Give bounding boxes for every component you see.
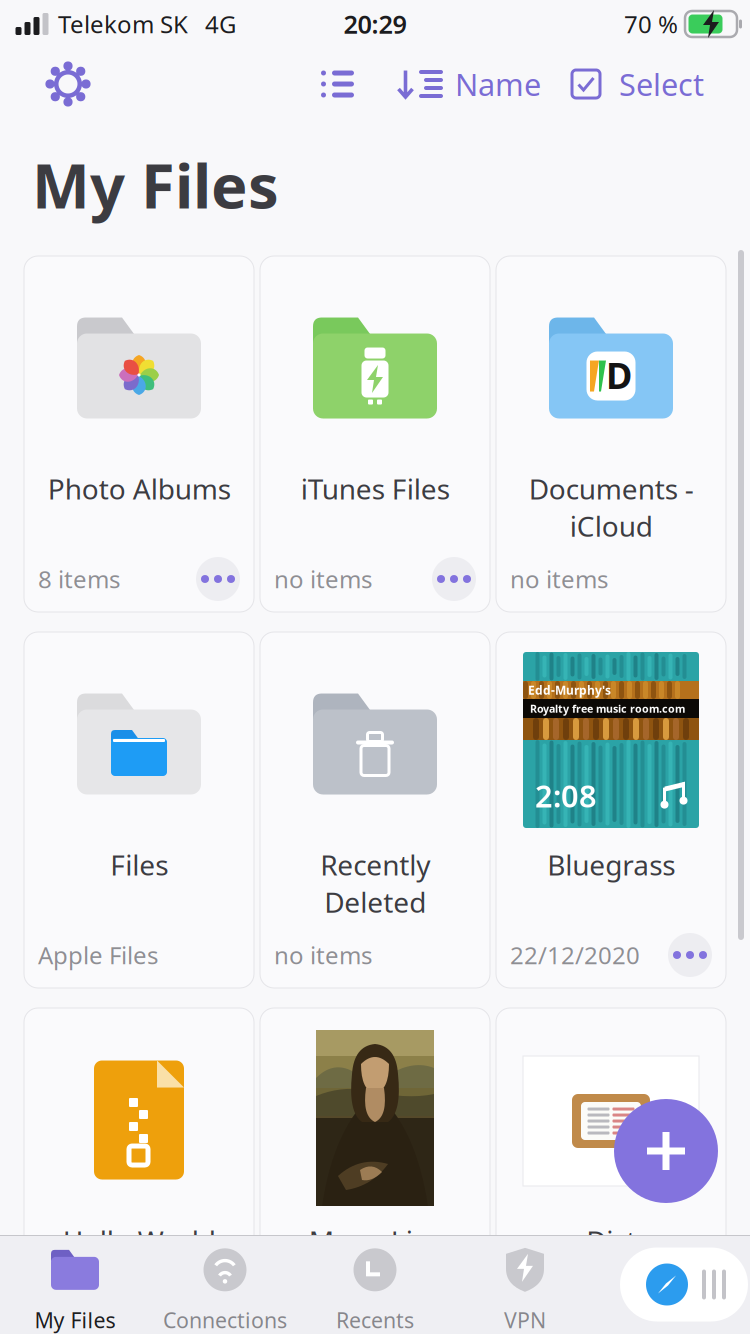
button[interactable]: Back to Safari bbox=[620, 1247, 748, 1321]
staticText: iTunes Files bbox=[300, 470, 449, 507]
staticText: VPN bbox=[504, 1306, 546, 1334]
button[interactable]: More options bbox=[196, 557, 240, 601]
button[interactable]: Recently Deleted bbox=[260, 632, 490, 988]
button[interactable]: Dict bbox=[496, 1008, 726, 1334]
staticText: Photo Albums bbox=[47, 470, 230, 507]
staticText: Select bbox=[619, 64, 704, 104]
button[interactable]: More options bbox=[432, 557, 476, 601]
button[interactable]: iTunes Files bbox=[260, 256, 490, 612]
button[interactable]: Files bbox=[24, 632, 254, 988]
button[interactable]: VPN bbox=[450, 1235, 600, 1334]
staticText: My Files bbox=[34, 1306, 115, 1334]
staticText: Name bbox=[455, 64, 541, 104]
button[interactable]: Hello World bbox=[24, 1008, 254, 1334]
staticText: Royalty free music room.com bbox=[530, 701, 685, 716]
staticText: Files bbox=[110, 846, 168, 883]
staticText: no items bbox=[274, 563, 372, 595]
staticText: 2:08 bbox=[535, 775, 597, 816]
button[interactable]: My Files bbox=[0, 1235, 150, 1334]
staticText: Hello World bbox=[62, 1222, 215, 1259]
staticText: Dict bbox=[586, 1222, 636, 1259]
staticText: Documents - iCloud bbox=[528, 470, 693, 544]
button[interactable]: Name bbox=[398, 53, 541, 115]
staticText: Mona Lisa bbox=[308, 1222, 441, 1259]
staticText: Telekom SK bbox=[58, 8, 188, 40]
button[interactable]: Add bbox=[614, 1099, 718, 1203]
button[interactable]: Settings bbox=[0, 53, 105, 115]
staticText: no items bbox=[274, 939, 372, 971]
button[interactable]: Edd-Murphy's bbox=[496, 632, 726, 988]
staticText: Recently Deleted bbox=[320, 846, 430, 920]
button[interactable]: Recents bbox=[300, 1235, 450, 1334]
button[interactable]: Select bbox=[572, 53, 750, 115]
staticText: My Files bbox=[32, 144, 279, 225]
staticText: Bluegrass bbox=[547, 846, 675, 883]
staticText: 4G bbox=[205, 8, 236, 40]
staticText: no items bbox=[510, 563, 608, 595]
staticText: Connections bbox=[163, 1306, 287, 1334]
staticText: 70 % bbox=[624, 8, 678, 40]
button[interactable]: Change view bbox=[309, 53, 366, 115]
staticText: Recents bbox=[336, 1306, 414, 1334]
staticText: 22/12/2020 bbox=[510, 939, 640, 971]
staticText: 20:29 bbox=[343, 7, 406, 41]
button[interactable]: More options bbox=[668, 933, 712, 977]
staticText: 8 items bbox=[38, 563, 120, 595]
button[interactable]: D bbox=[496, 256, 726, 612]
staticText: Edd-Murphy's bbox=[528, 682, 611, 698]
button[interactable]: Photo Albums bbox=[24, 256, 254, 612]
button[interactable]: Connections bbox=[150, 1235, 300, 1334]
button[interactable]: Mona Lisa bbox=[260, 1008, 490, 1334]
staticText: Apple Files bbox=[38, 939, 158, 971]
staticText: D bbox=[606, 351, 632, 399]
